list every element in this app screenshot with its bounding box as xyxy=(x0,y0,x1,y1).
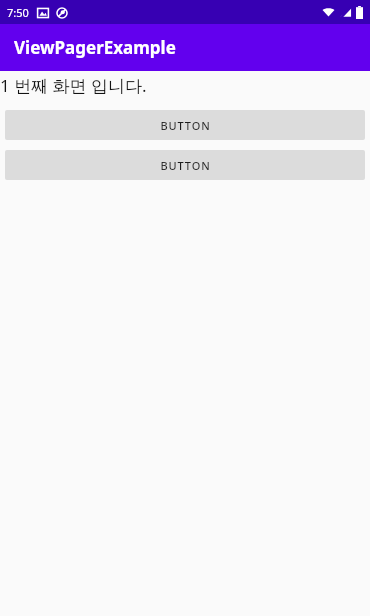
staticText: BUTTON xyxy=(160,158,211,173)
staticText: ViewPagerExample xyxy=(14,36,176,59)
staticText: BUTTON xyxy=(160,118,211,133)
button[interactable]: BUTTON xyxy=(5,110,365,140)
staticText: 7:50 xyxy=(7,5,29,20)
button[interactable]: BUTTON xyxy=(5,150,365,180)
staticText: 1 번째 화면 입니다. xyxy=(0,74,147,97)
